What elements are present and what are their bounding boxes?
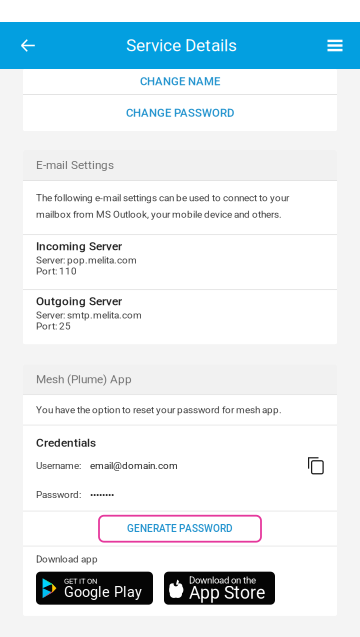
staticText: Username: [36,460,81,471]
button[interactable]: Get it on Google Play [36,572,153,605]
staticText: •••••••• [90,489,114,500]
staticText: Service Details [126,35,237,55]
staticText: Port: 25 [36,320,71,332]
staticText: Incoming Server [36,239,122,253]
staticText: Server: smtp.melita.com [36,309,142,321]
staticText: GENERATE PASSWORD [127,523,233,534]
button[interactable]: CHANGE NAME [23,69,337,94]
button[interactable]: CHANGE PASSWORD [23,95,337,131]
staticText: Download on the [189,575,256,586]
button[interactable]: GENERATE PASSWORD [99,516,261,542]
staticText: CHANGE PASSWORD [126,106,234,120]
staticText: Server: pop.melita.com [36,254,137,266]
button[interactable]: Back [6,22,50,69]
staticText: E-mail Settings [36,158,114,172]
staticText: email@domain.com [90,460,178,471]
staticText: Port: 110 [36,265,77,277]
staticText: GET IT ON [64,577,97,586]
staticText: Outgoing Server [36,294,122,308]
button[interactable]: Menu [313,22,357,69]
staticText: App Store [189,582,265,603]
staticText: CHANGE NAME [140,75,220,88]
staticText: Mesh (Plume) App [36,372,132,386]
staticText: Password: [36,489,81,500]
staticText: You have the option to reset your passwo… [36,404,282,416]
staticText: The following e-mail settings can be use… [36,192,289,220]
staticText: Credentials [36,436,96,450]
button[interactable]: Copy username [308,457,324,474]
button[interactable]: Download on the App Store [164,572,275,605]
staticText: Download app [36,553,98,565]
staticText: Google Play [64,584,142,601]
